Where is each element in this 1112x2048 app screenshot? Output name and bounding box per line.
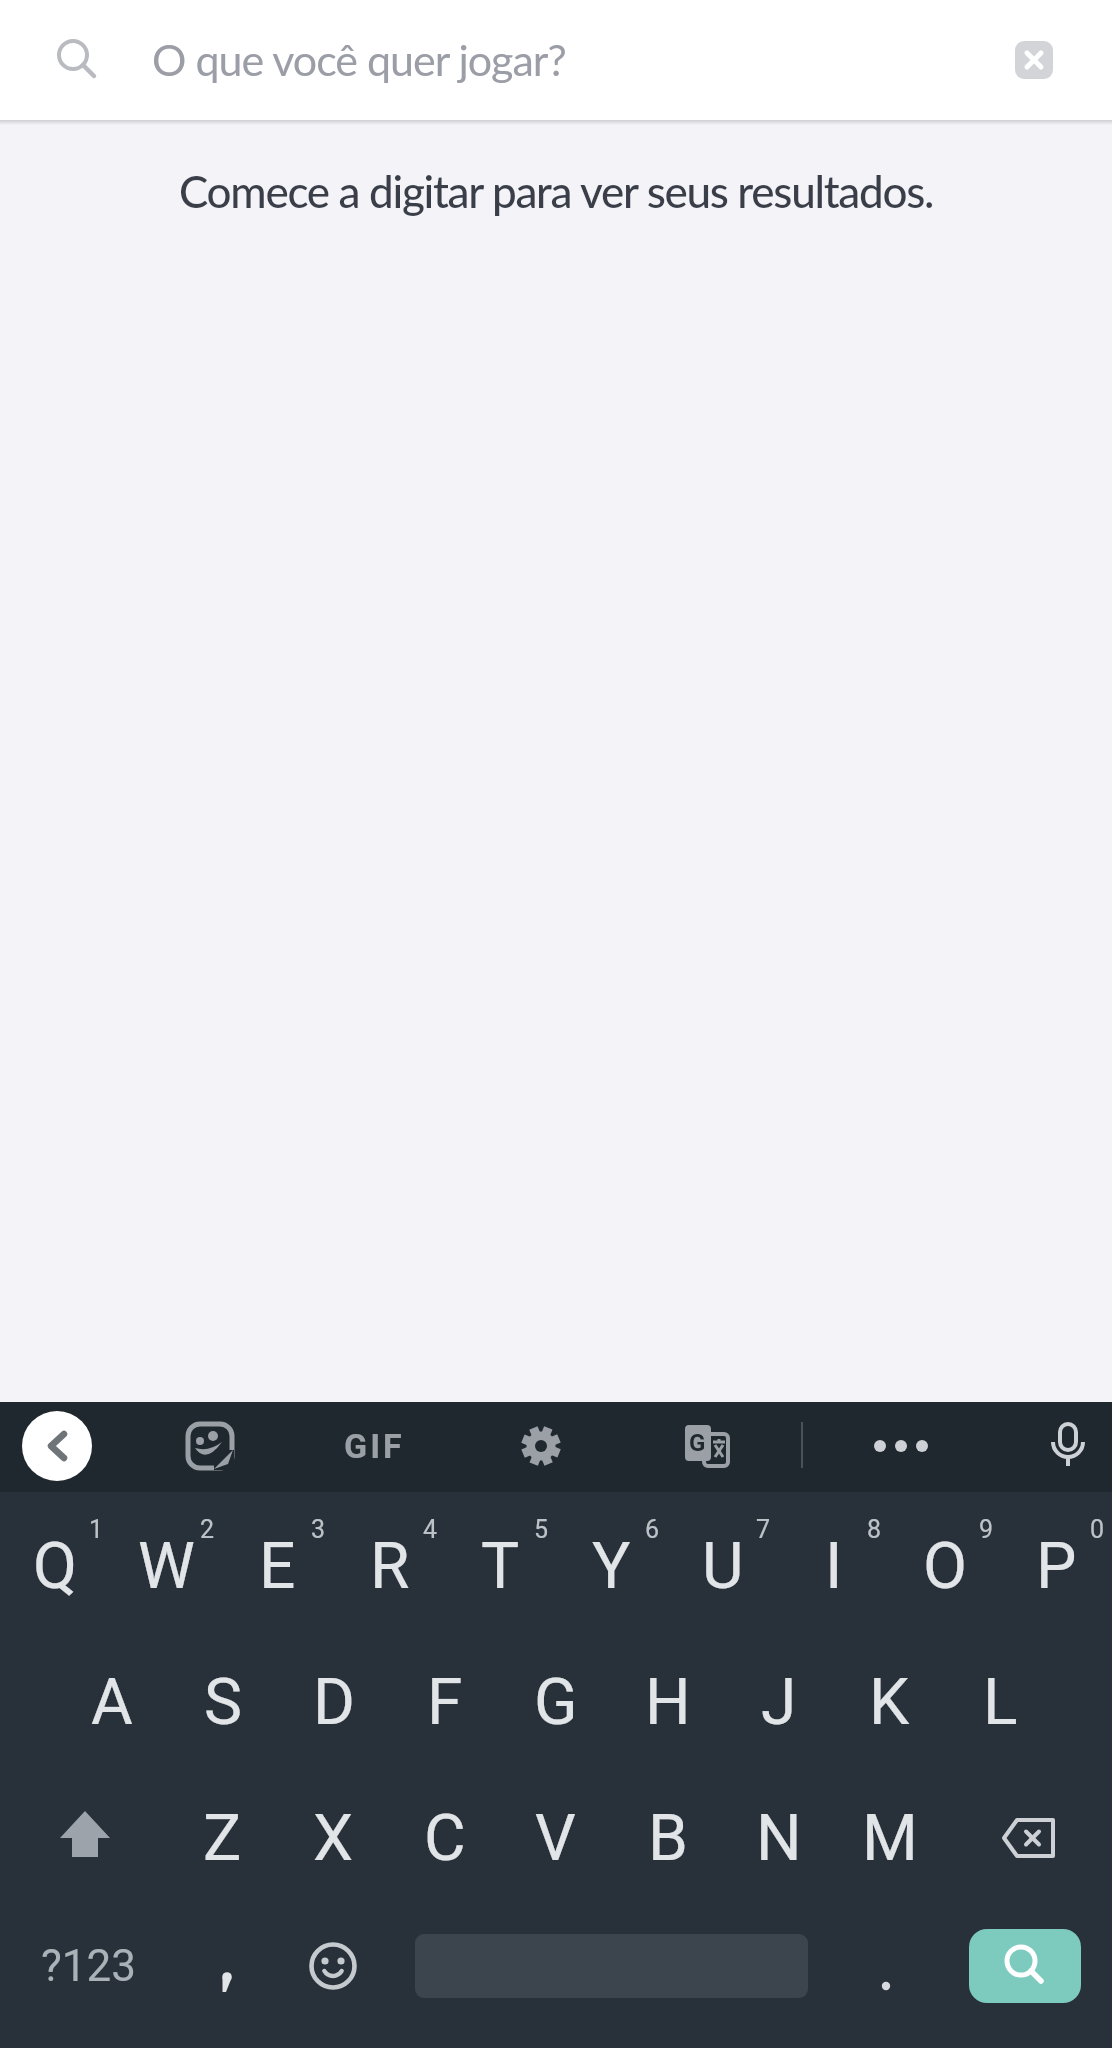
button[interactable] [946, 1770, 1112, 1906]
button[interactable]: W [111, 1498, 222, 1634]
button[interactable] [283, 1901, 383, 2031]
button[interactable] [2, 1767, 168, 1903]
staticText: K [869, 1665, 910, 1740]
staticText: Z [203, 1801, 242, 1876]
staticText: O [923, 1529, 968, 1604]
staticText: H [645, 1665, 691, 1740]
staticText: 0 [1090, 1515, 1105, 1544]
staticText: A [91, 1665, 133, 1740]
button[interactable] [1015, 41, 1053, 79]
staticText: O que você quer jogar? [152, 34, 566, 86]
staticText: D [313, 1665, 355, 1740]
staticText: G [689, 1429, 706, 1457]
staticText: E [259, 1529, 296, 1604]
button[interactable]: S [167, 1634, 278, 1770]
staticText: B [648, 1801, 688, 1876]
staticText: GIF [344, 1426, 405, 1466]
staticText: 6 [645, 1515, 660, 1544]
button[interactable]: M [834, 1770, 945, 1906]
button[interactable]: Y [556, 1498, 667, 1634]
button[interactable]: K [834, 1634, 945, 1770]
button[interactable]: G [500, 1634, 611, 1770]
staticText: I [825, 1529, 843, 1604]
staticText: L [983, 1665, 1018, 1740]
staticText: U [702, 1529, 744, 1604]
button[interactable] [165, 1401, 255, 1491]
staticText: 2 [200, 1515, 215, 1544]
button[interactable] [851, 1401, 951, 1491]
button[interactable]: D [278, 1634, 389, 1770]
button[interactable]: T [445, 1498, 556, 1634]
staticText: Q [33, 1529, 78, 1604]
button[interactable]: H [612, 1634, 723, 1770]
button[interactable]: GIF [319, 1401, 429, 1491]
button[interactable]: F [389, 1634, 500, 1770]
button[interactable]: Q [0, 1498, 111, 1634]
staticText: W [138, 1529, 195, 1604]
button[interactable] [496, 1401, 586, 1491]
button[interactable]: X [278, 1770, 389, 1906]
button[interactable]: O [890, 1498, 1001, 1634]
button[interactable]: N [723, 1770, 834, 1906]
staticText: X [313, 1801, 354, 1876]
button[interactable] [969, 1929, 1081, 2003]
staticText: J [761, 1665, 797, 1740]
staticText: P [1036, 1529, 1077, 1604]
staticText: V [535, 1801, 576, 1876]
staticText: F [427, 1665, 463, 1740]
button[interactable]: E [222, 1498, 333, 1634]
staticText: G [534, 1665, 578, 1740]
button[interactable]: J [723, 1634, 834, 1770]
staticText: S [204, 1665, 242, 1740]
staticText: M [862, 1801, 918, 1876]
staticText: 9 [979, 1515, 994, 1544]
button[interactable]: L [945, 1634, 1056, 1770]
button[interactable]: O que você quer jogar? [0, 0, 1112, 120]
button[interactable] [22, 1411, 92, 1481]
button[interactable]: P [1001, 1498, 1112, 1634]
button[interactable]: R [334, 1498, 445, 1634]
button[interactable]: Z [167, 1770, 278, 1906]
staticText: 8 [867, 1515, 882, 1544]
button[interactable]: C [389, 1770, 500, 1906]
button[interactable]: I [778, 1498, 889, 1634]
staticText: ?123 [41, 1940, 136, 1992]
staticText: 7 [756, 1515, 771, 1544]
staticText: Y [592, 1529, 631, 1604]
staticText: Comece a digitar para ver seus resultado… [179, 165, 934, 218]
button[interactable]: ?123 [8, 1901, 168, 2031]
staticText: 3 [311, 1515, 326, 1544]
button[interactable] [1028, 1401, 1108, 1491]
button[interactable]: G [662, 1401, 752, 1491]
staticText: N [756, 1801, 802, 1876]
button[interactable]: V [500, 1770, 611, 1906]
staticText: C [424, 1801, 466, 1876]
staticText: 5 [534, 1515, 549, 1544]
button[interactable]: A [56, 1634, 167, 1770]
button[interactable]: U [667, 1498, 778, 1634]
staticText: 4 [423, 1515, 438, 1544]
staticText: 1 [89, 1515, 104, 1544]
button[interactable] [176, 1901, 276, 2031]
staticText: T [481, 1529, 520, 1604]
staticText: R [370, 1529, 410, 1604]
button[interactable]: B [612, 1770, 723, 1906]
button[interactable] [841, 1901, 931, 2031]
